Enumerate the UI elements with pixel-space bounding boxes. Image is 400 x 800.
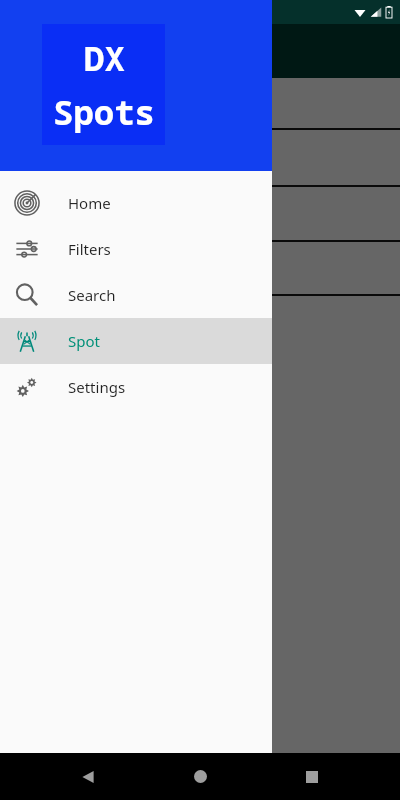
button[interactable]: Back xyxy=(64,753,112,800)
button[interactable]: Settings xyxy=(0,364,272,410)
staticText: Settings xyxy=(68,377,126,397)
staticText: Search xyxy=(68,285,116,305)
button[interactable]: Spot xyxy=(0,318,272,364)
button[interactable]: Filters xyxy=(0,226,272,272)
staticText: Filters xyxy=(68,239,111,259)
button[interactable]: Home xyxy=(0,180,272,226)
button[interactable]: Search xyxy=(0,272,272,318)
button[interactable]: Home xyxy=(176,753,224,800)
button[interactable]: Recents xyxy=(288,753,336,800)
staticText: Spot xyxy=(68,331,100,351)
staticText: Home xyxy=(68,193,111,213)
staticText: Spots xyxy=(53,89,155,135)
staticText: DX xyxy=(84,35,125,81)
